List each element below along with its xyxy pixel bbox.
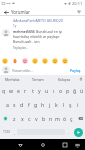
button[interactable]: Emoji bbox=[22, 58, 28, 64]
button[interactable]: r bbox=[22, 83, 29, 97]
button[interactable]: , bbox=[12, 125, 17, 139]
staticText: k bbox=[55, 101, 58, 108]
staticText: mehmet5656 bbox=[13, 29, 35, 34]
staticText: s bbox=[13, 101, 16, 108]
button[interactable]: q bbox=[0, 83, 8, 97]
button[interactable]: o bbox=[57, 83, 64, 97]
button[interactable]: ö bbox=[61, 111, 68, 125]
button[interactable]: m bbox=[54, 111, 61, 125]
staticText: v bbox=[35, 115, 38, 122]
button[interactable]: Emoji bbox=[52, 58, 58, 64]
button[interactable]: Back bbox=[2, 8, 10, 16]
staticText: Paylaş bbox=[70, 68, 81, 73]
button[interactable]: h bbox=[39, 97, 46, 111]
staticText: h bbox=[41, 101, 45, 108]
staticText: ı bbox=[53, 87, 55, 94]
staticText: ş bbox=[69, 101, 72, 108]
button[interactable]: p bbox=[64, 83, 71, 97]
staticText: e bbox=[17, 87, 20, 94]
staticText: 20:11 bbox=[72, 1, 83, 6]
staticText: Yorumlar bbox=[11, 9, 30, 15]
button[interactable]: s bbox=[11, 97, 18, 111]
button[interactable]: Emoji bbox=[32, 58, 38, 64]
button[interactable]: d bbox=[18, 97, 25, 111]
staticText: c bbox=[28, 115, 31, 122]
staticText: ç bbox=[70, 115, 73, 122]
button[interactable]: ç bbox=[68, 111, 75, 125]
staticText: u bbox=[45, 87, 49, 94]
button[interactable]: Hide keyboard bbox=[72, 140, 82, 150]
button[interactable]: g bbox=[32, 97, 39, 111]
staticText: ö bbox=[63, 115, 67, 122]
button[interactable]: Sort bbox=[75, 8, 83, 16]
button[interactable]: z bbox=[10, 111, 18, 125]
staticText: g bbox=[34, 101, 38, 108]
button[interactable]: Home bbox=[38, 140, 48, 150]
button[interactable]: u bbox=[43, 83, 50, 97]
button[interactable]: Paylaş bbox=[69, 67, 82, 74]
button[interactable]: f bbox=[25, 97, 32, 111]
staticText: Merhaba bbox=[5, 77, 20, 82]
staticText: i bbox=[77, 101, 79, 108]
staticText: b bbox=[42, 115, 46, 122]
staticText: ?123 bbox=[3, 130, 10, 134]
button[interactable]: c bbox=[26, 111, 33, 125]
button[interactable]: j bbox=[46, 97, 53, 111]
staticText: Tamam bbox=[32, 77, 44, 82]
staticText: z bbox=[13, 115, 16, 122]
button[interactable]: v bbox=[33, 111, 40, 125]
button[interactable]: w bbox=[8, 83, 15, 97]
button[interactable]: ü bbox=[78, 83, 85, 97]
staticText: l bbox=[63, 101, 65, 108]
staticText: #AnkaraParkıMETO #EURO20 bbox=[13, 18, 63, 23]
button[interactable]: Send bbox=[74, 128, 83, 137]
button[interactable]: n bbox=[47, 111, 54, 125]
button[interactable]: Emoji bbox=[12, 58, 18, 64]
staticText: Bonultuvalt . izin bbox=[13, 39, 40, 44]
staticText: Yorum ekle... bbox=[12, 68, 33, 73]
button[interactable]: b bbox=[40, 111, 47, 125]
staticText: Kolaysa bbox=[58, 77, 71, 82]
staticText: x bbox=[21, 115, 24, 122]
staticText: n bbox=[49, 115, 53, 122]
button[interactable]: x bbox=[18, 111, 26, 125]
button[interactable]: Emoji bbox=[62, 58, 68, 64]
button[interactable]: l bbox=[60, 97, 67, 111]
button[interactable]: Back bbox=[15, 140, 25, 150]
staticText: p bbox=[66, 87, 70, 94]
button[interactable]: a bbox=[4, 97, 11, 111]
staticText: a bbox=[6, 101, 9, 108]
button[interactable]: ı bbox=[50, 83, 57, 97]
staticText: ğ bbox=[73, 87, 77, 94]
button[interactable]: Merhaba bbox=[0, 75, 25, 83]
button[interactable]: k bbox=[53, 97, 60, 111]
staticText: o bbox=[59, 87, 63, 94]
button[interactable]: Kolaysa bbox=[51, 75, 77, 83]
button[interactable]: t bbox=[29, 83, 36, 97]
staticText: j bbox=[49, 101, 51, 108]
staticText: d bbox=[20, 101, 24, 108]
staticText: r bbox=[24, 87, 27, 94]
staticText: w bbox=[9, 87, 14, 94]
button[interactable]: y bbox=[36, 83, 43, 97]
button[interactable]: e bbox=[15, 83, 22, 97]
button[interactable]: i bbox=[74, 97, 81, 111]
staticText: Bunaltucal en iyi bbox=[36, 29, 63, 34]
button[interactable]: Voice input bbox=[77, 75, 85, 83]
staticText: , bbox=[14, 130, 15, 135]
button[interactable]: Tamam bbox=[25, 75, 51, 83]
button[interactable]: Emoji bbox=[42, 58, 48, 64]
button[interactable]: ğ bbox=[71, 83, 78, 97]
button[interactable]: Recents bbox=[60, 140, 70, 150]
button[interactable]: ş bbox=[67, 97, 74, 111]
button[interactable]: Emoji bbox=[2, 58, 8, 64]
staticText: hazırlatlar, etkinlik ve paylaşır bbox=[13, 34, 60, 39]
button[interactable]: ?123 bbox=[0, 125, 12, 139]
button[interactable]: Backspace bbox=[75, 111, 85, 125]
staticText: ü bbox=[80, 87, 84, 94]
button[interactable]: Shift bbox=[0, 111, 10, 125]
staticText: m bbox=[55, 115, 60, 122]
staticText: Paylaşılan... bbox=[13, 46, 29, 50]
